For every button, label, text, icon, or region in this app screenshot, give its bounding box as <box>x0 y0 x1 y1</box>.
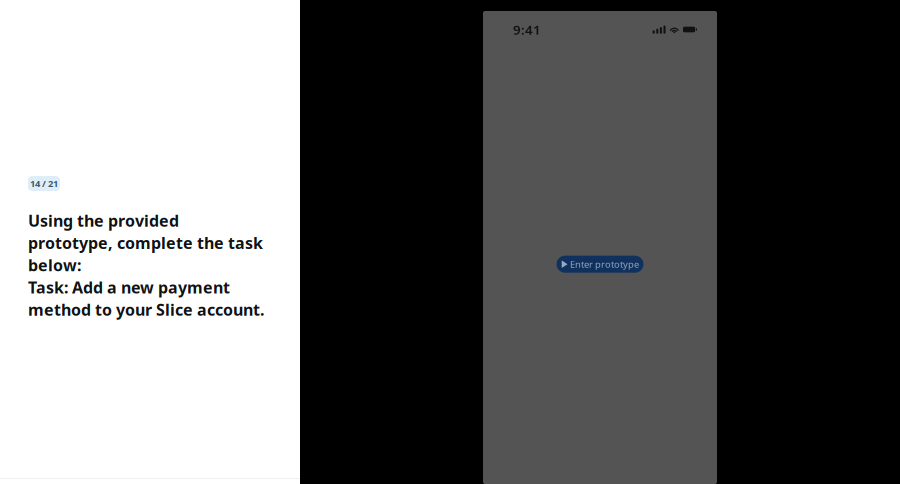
staticText: 9:41 <box>513 21 541 38</box>
button[interactable]: Enter prototype <box>556 256 643 273</box>
staticText: Using the provided prototype, complete t… <box>28 210 264 320</box>
staticText: 14 / 21 <box>30 177 58 190</box>
staticText: Enter prototype <box>570 258 639 270</box>
